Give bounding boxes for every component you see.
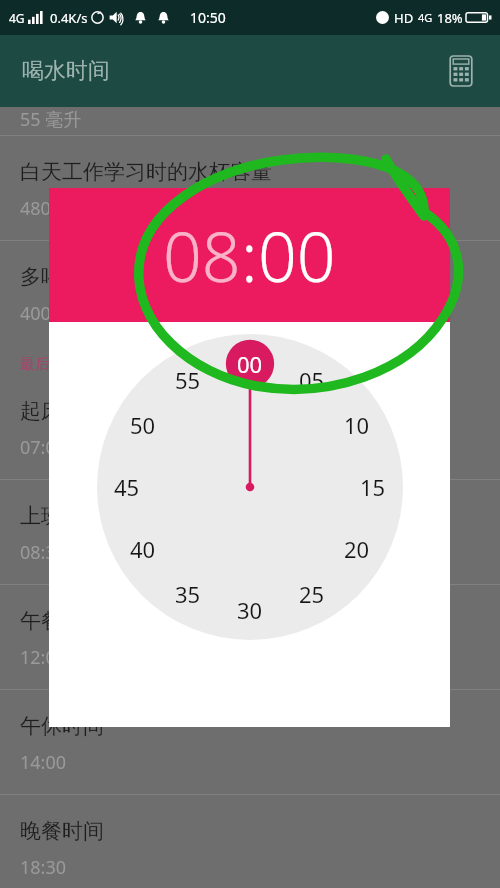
staticText: : (241, 209, 258, 302)
staticText: 30 (237, 595, 263, 625)
staticText: 35 (175, 579, 201, 609)
staticText: 午休时间 (20, 713, 104, 739)
button[interactable]: Calculator (438, 48, 484, 94)
button[interactable]: 起床时间 (0, 375, 500, 479)
staticText: 10 (344, 410, 370, 440)
button[interactable]: 午餐时间 (0, 585, 500, 689)
staticText: 18% (437, 9, 463, 27)
staticText: 55 毫升 (20, 107, 82, 132)
staticText: 12:00 (20, 645, 67, 670)
staticText: 05 (299, 365, 325, 395)
staticText: 喝水时间 (22, 57, 110, 85)
staticText: 08:30 (20, 540, 67, 565)
staticText: 07:00 (20, 435, 67, 460)
button[interactable]: 晚餐时间 (0, 795, 500, 888)
staticText: 10:50 (190, 8, 226, 27)
button[interactable]: 上班时间 (0, 480, 500, 584)
staticText: 晚餐时间 (20, 818, 104, 844)
staticText: 45 (114, 472, 140, 502)
button[interactable]: 00 (258, 209, 336, 302)
staticText: 00 (237, 349, 263, 379)
staticText: 白天工作学习时的水杯容量 (20, 159, 272, 185)
staticText: 起床时间 (20, 398, 104, 424)
staticText: 55 (175, 365, 201, 395)
staticText: 0.4K/s (50, 9, 88, 27)
staticText: 40 (130, 534, 156, 564)
staticText: 00 (258, 209, 336, 302)
staticText: 400 毫升 (20, 301, 92, 326)
staticText: 最后一次 (20, 355, 80, 374)
button[interactable]: 08 (163, 209, 241, 302)
staticText: 午餐时间 (20, 608, 104, 634)
staticText: 4G (9, 10, 25, 26)
button[interactable]: 白天工作学习时的水杯容量 (0, 136, 500, 240)
button[interactable]: 午休时间 (0, 690, 500, 794)
button[interactable]: 多喝水提醒 (0, 241, 500, 345)
staticText: 480 毫升 (20, 196, 92, 221)
staticText: 25 (299, 579, 325, 609)
staticText: 18:30 (20, 855, 67, 880)
staticText: 50 (130, 410, 156, 440)
staticText: 14:00 (20, 750, 67, 775)
staticText: 15 (360, 472, 386, 502)
staticText: 多喝水提醒 (20, 264, 125, 290)
staticText: 上班时间 (20, 503, 104, 529)
staticText: HD (394, 9, 414, 27)
staticText: 20 (344, 534, 370, 564)
staticText: 4G (418, 10, 433, 25)
staticText: 08 (163, 209, 241, 302)
button[interactable]: 00 (97, 334, 403, 640)
